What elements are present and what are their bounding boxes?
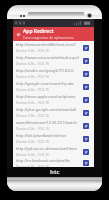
staticText: App Redirect (23, 28, 54, 35)
other: Open link (83, 136, 89, 142)
button[interactable]: http://www.androidfilehost.com/?fid=23 (13, 41, 94, 54)
other: Open link (83, 45, 89, 51)
button[interactable]: http://m.facebook.com/profile (13, 158, 94, 168)
staticText: http://www.sena.com/default.aspx?lang= (16, 55, 81, 60)
staticText: http://andre.me/goog3/7/14/2.0 (16, 68, 74, 73)
button[interactable]: http://bit.ly/wefbwk/redirect (13, 132, 94, 145)
staticText: http://www.androidfilehost.com/?fid=23 (16, 42, 81, 47)
staticText: www.filmstream/10.30.29.1/watch (16, 120, 77, 125)
staticText: htc (50, 168, 60, 176)
staticText: http://m.facebook.com/profile (16, 158, 70, 163)
staticText: Device: 6.8s - 10.3.15 (16, 126, 50, 131)
other: Open link (83, 110, 89, 116)
other: Open link (83, 149, 89, 155)
staticText: Device: 6.8s - 10.3.15 (16, 139, 50, 144)
staticText: http://store.apple.com/us/iphone (16, 94, 76, 99)
staticText: Device: 6.8s - 10.3.15 (16, 48, 50, 53)
staticText: Device: 6.8s - 10.3.15 (16, 61, 50, 66)
staticText: Device: 6.8s - 10.3.15 (16, 152, 50, 157)
other: Open link (83, 160, 89, 166)
other: Open link (83, 58, 89, 64)
other: Open link (83, 71, 89, 77)
button[interactable]: http://andre.me/goog3/7/14/2.0 (13, 67, 94, 80)
other: Open link (83, 123, 89, 129)
button[interactable]: http://google.com/search?q=abc (13, 80, 94, 93)
staticText: http://yahoo.co.uk/news/wef/item (16, 146, 77, 151)
staticText: Device: 6.8s - 10.3.15 (16, 113, 50, 118)
staticText: Device: 6.8s - 10.3.15 (16, 74, 50, 79)
staticText: Device: 6.8s - 10.3.15 (16, 164, 50, 168)
button[interactable]: http://www.sena.com/default.aspx?lang= (13, 54, 94, 67)
other: Open link (83, 84, 89, 90)
staticText: Device: 6.8s - 10.3.15 (16, 100, 50, 105)
staticText: http://bit.ly/wefbwk/redirect (16, 133, 67, 138)
other: Open link (83, 97, 89, 103)
button[interactable]: www.filmstream/10.30.29.1/watch (13, 119, 94, 132)
button[interactable]: http://store.apple.com/us/iphone (13, 93, 94, 106)
staticText: Device: 6.8s - 10.3.15 (16, 87, 50, 92)
staticText: http://google.com/search?q=abc (16, 81, 74, 86)
button[interactable]: http://plus.google.com/stream/all (13, 106, 94, 119)
staticText: http://plus.google.com/stream/all (16, 107, 77, 112)
staticText: Case magnetico de aplicaciones (23, 35, 74, 40)
button[interactable]: http://yahoo.co.uk/news/wef/item (13, 145, 94, 158)
